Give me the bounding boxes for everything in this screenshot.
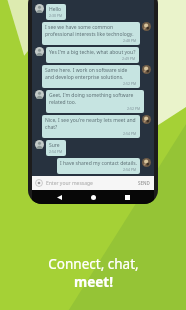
staticText: 2:49 PM [122,56,136,61]
button[interactable]: SEND [137,180,151,186]
staticText: 2:48 PM [123,38,137,43]
staticText: Nice, I see you're nearby lets meet and … [45,117,137,131]
button[interactable]: Same here. I work on software side and d… [35,65,151,88]
other: Contact avatar [35,90,44,99]
staticText: Connect, chat, [48,255,139,273]
staticText: I have shared my contact details. [60,160,137,167]
staticText: Geet, I'm doing something software relat… [49,92,141,106]
staticText: 2:54 PM [123,167,137,172]
button[interactable]: Contact avatar [35,47,151,63]
button[interactable]: Contact avatar [35,90,151,113]
button[interactable]: Home [86,190,100,204]
staticText: 2:54 PM [49,149,63,154]
staticText: Hello [49,6,62,13]
staticText: 2:52 PM [127,106,141,111]
staticText: Sure [49,142,60,149]
staticText: 2:52 PM [123,81,137,86]
button[interactable]: Attach [35,179,43,187]
staticText: Yes I'm a big techie, what about you? [49,49,136,56]
staticText: Same here. I work on software side and d… [45,67,137,81]
staticText: Enter your message [46,180,137,187]
staticText: SEND [138,180,150,186]
staticText: 2:54 PM [123,131,137,136]
other: My avatar [142,158,151,167]
staticText: meet! [74,273,113,291]
staticText: I see we have some common professional i… [45,24,137,38]
button[interactable]: I see we have some common professional i… [35,22,151,45]
other: My avatar [142,65,151,74]
button[interactable]: I have shared my contact details. [35,158,151,174]
button[interactable]: Contact avatar [35,140,151,156]
button[interactable]: Nice, I see you're nearby lets meet and … [35,115,151,138]
button[interactable]: Recents [120,190,134,204]
other: My avatar [142,22,151,31]
other: Contact avatar [35,47,44,56]
other: Contact avatar [35,140,44,149]
button[interactable]: Contact avatar [35,4,151,20]
other: Contact avatar [35,4,44,13]
staticText: 2:30 PM [49,13,63,18]
other: My avatar [142,115,151,124]
button[interactable]: Back [52,190,66,204]
